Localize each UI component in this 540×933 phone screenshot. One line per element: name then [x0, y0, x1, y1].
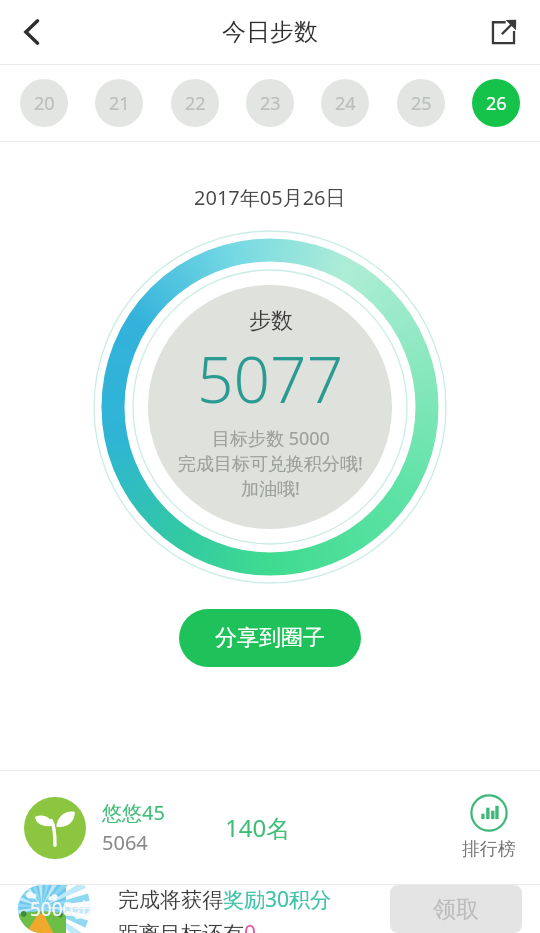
button[interactable]: 分享到圈子: [179, 609, 361, 667]
staticText: 加油哦!: [241, 476, 300, 501]
staticText: 5077: [197, 335, 344, 422]
staticText: 23: [260, 91, 281, 116]
staticText: 今日步数: [222, 17, 318, 47]
staticText: 分享到圈子: [215, 624, 325, 652]
button[interactable]: 领取: [390, 885, 522, 933]
button[interactable]: 24: [321, 79, 369, 127]
button[interactable]: 21: [95, 79, 143, 127]
staticText: 2017年05月26日: [194, 184, 346, 211]
staticText: 领取: [433, 895, 479, 924]
button[interactable]: 20: [20, 79, 68, 127]
staticText: 22: [185, 91, 206, 116]
button[interactable]: 排行榜: [462, 794, 516, 861]
staticText: 完成将获得奖励30积分: [118, 885, 332, 914]
staticText: 完成目标可兑换积分哦!: [178, 451, 363, 476]
staticText: 5000步: [30, 896, 93, 922]
button[interactable]: Share: [478, 7, 528, 57]
staticText: 目标步数 5000: [212, 426, 330, 451]
staticText: 距离目标还有0: [118, 919, 257, 933]
staticText: 26: [486, 91, 507, 116]
button[interactable]: 22: [171, 79, 219, 127]
staticText: 21: [109, 91, 130, 116]
staticText: 25: [411, 91, 432, 116]
staticText: 悠悠45: [102, 799, 165, 826]
button[interactable]: 23: [246, 79, 294, 127]
staticText: 20: [34, 91, 55, 116]
staticText: 排行榜: [462, 838, 516, 861]
button[interactable]: Back: [4, 4, 60, 60]
button[interactable]: 悠悠45: [0, 771, 540, 884]
staticText: 140名: [225, 811, 291, 844]
staticText: 5064: [102, 829, 148, 856]
button[interactable]: 26: [472, 79, 520, 127]
staticText: 24: [335, 91, 356, 116]
button[interactable]: 25: [397, 79, 445, 127]
staticText: 步数: [249, 307, 293, 335]
